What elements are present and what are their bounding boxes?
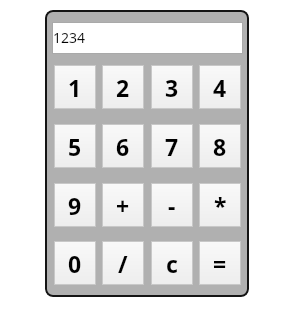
button[interactable]: + <box>102 183 144 227</box>
button[interactable]: 8 <box>199 124 241 168</box>
staticText: - <box>168 190 176 221</box>
staticText: 2 <box>116 72 130 103</box>
button[interactable]: = <box>199 241 241 285</box>
button[interactable]: 5 <box>54 124 96 168</box>
staticText: = <box>213 248 227 279</box>
staticText: 7 <box>165 131 179 162</box>
button[interactable]: 1 <box>54 65 96 109</box>
staticText: 1 <box>68 72 82 103</box>
staticText: 6 <box>116 131 130 162</box>
button[interactable]: 4 <box>199 65 241 109</box>
staticText: 1234 <box>53 28 86 47</box>
button[interactable]: c <box>151 241 193 285</box>
button[interactable]: 6 <box>102 124 144 168</box>
staticText: + <box>116 190 130 221</box>
staticText: 8 <box>213 131 227 162</box>
staticText: 4 <box>213 72 227 103</box>
staticText: 9 <box>68 190 82 221</box>
staticText: * <box>214 190 227 221</box>
button[interactable]: / <box>102 241 144 285</box>
staticText: c <box>166 248 178 279</box>
staticText: 0 <box>68 248 82 279</box>
button[interactable]: 1234 <box>52 22 243 54</box>
button[interactable]: 0 <box>54 241 96 285</box>
button[interactable]: 9 <box>54 183 96 227</box>
button[interactable]: 2 <box>102 65 144 109</box>
button[interactable]: 7 <box>151 124 193 168</box>
button[interactable]: 3 <box>151 65 193 109</box>
staticText: / <box>118 248 128 279</box>
staticText: 5 <box>68 131 82 162</box>
button[interactable]: - <box>151 183 193 227</box>
staticText: 3 <box>165 72 179 103</box>
button[interactable]: * <box>199 183 241 227</box>
